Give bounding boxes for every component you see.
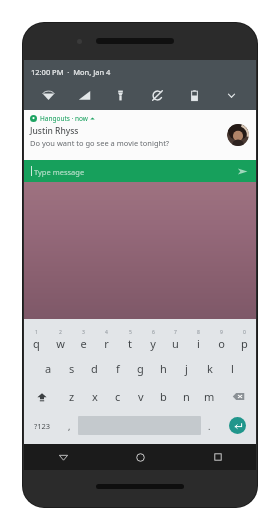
button[interactable]: 3 — [72, 326, 95, 354]
staticText: Type message — [34, 167, 85, 177]
staticText: d — [91, 361, 98, 376]
staticText: m — [204, 389, 215, 404]
button[interactable]: ?123 — [24, 411, 61, 440]
staticText: l — [231, 361, 234, 376]
button[interactable]: 2 — [48, 326, 72, 354]
staticText: o — [218, 336, 225, 351]
button[interactable]: d — [83, 354, 106, 382]
staticText: i — [197, 336, 200, 351]
button[interactable]: Wi-Fi — [30, 83, 66, 107]
staticText: 9 — [220, 329, 223, 336]
button[interactable]: g — [129, 354, 152, 382]
button[interactable]: 6 — [141, 326, 164, 354]
staticText: . — [208, 420, 211, 432]
button[interactable]: Mobile signal — [66, 83, 102, 107]
button[interactable]: 7 — [164, 326, 187, 354]
staticText: 7 — [174, 329, 177, 336]
button[interactable]: 8 — [187, 326, 210, 354]
staticText: r — [104, 336, 109, 351]
button[interactable]: 9 — [210, 326, 233, 354]
staticText: u — [172, 336, 179, 351]
staticText: n — [183, 389, 190, 404]
button[interactable]: n — [175, 382, 198, 411]
button[interactable]: 4 — [95, 326, 118, 354]
staticText: a — [45, 361, 52, 376]
button[interactable]: a — [37, 354, 60, 382]
staticText: 12:00 PM · Mon, Jan 4 — [31, 67, 111, 77]
button[interactable]: Flashlight — [102, 83, 139, 107]
staticText: h — [160, 361, 167, 376]
button[interactable]: x — [83, 382, 106, 411]
button[interactable]: , — [61, 411, 78, 440]
staticText: ?123 — [34, 421, 51, 431]
button[interactable]: h — [152, 354, 175, 382]
button[interactable]: v — [129, 382, 152, 411]
staticText: 6 — [152, 329, 155, 336]
staticText: , — [68, 420, 71, 432]
staticText: 2 — [59, 329, 62, 336]
staticText: 1 — [35, 329, 38, 336]
button[interactable]: m — [198, 382, 221, 411]
button[interactable]: j — [175, 354, 198, 382]
button[interactable]: b — [152, 382, 175, 411]
button[interactable]: Home — [102, 444, 179, 470]
button[interactable]: Send — [236, 165, 248, 177]
staticText: e — [80, 336, 87, 351]
button[interactable]: l — [221, 354, 244, 382]
staticText: s — [69, 361, 75, 376]
staticText: k — [207, 361, 213, 376]
staticText: z — [69, 389, 75, 404]
button[interactable]: Backspace — [221, 382, 256, 411]
button[interactable]: Enter — [218, 411, 256, 440]
staticText: q — [33, 336, 40, 351]
button[interactable]: Expand quick settings — [213, 83, 250, 107]
staticText: t — [128, 336, 132, 351]
button[interactable]: Shift — [24, 382, 60, 411]
staticText: p — [241, 336, 248, 351]
button[interactable]: Hangouts · now — [24, 110, 256, 160]
button[interactable]: 5 — [118, 326, 141, 354]
staticText: 4 — [105, 329, 108, 336]
button[interactable]: c — [106, 382, 129, 411]
staticText: g — [137, 361, 144, 376]
staticText: y — [150, 336, 156, 351]
staticText: Justin Rhyss — [30, 125, 79, 137]
staticText: Hangouts · now — [40, 114, 88, 123]
button[interactable]: k — [198, 354, 221, 382]
button[interactable]: Auto-rotate off — [139, 83, 176, 107]
staticText: x — [92, 389, 98, 404]
staticText: v — [138, 389, 144, 404]
staticText: w — [56, 336, 65, 351]
staticText: Do you want to go see a movie tonight? — [30, 138, 170, 148]
staticText: 0 — [243, 329, 246, 336]
staticText: 5 — [129, 329, 132, 336]
button[interactable]: s — [60, 354, 83, 382]
staticText: j — [185, 361, 188, 376]
button[interactable]: Type message — [24, 160, 256, 182]
button[interactable]: Recent apps — [179, 444, 256, 470]
staticText: b — [160, 389, 167, 404]
staticText: f — [116, 361, 120, 376]
staticText: 3 — [82, 329, 85, 336]
button[interactable]: Back — [24, 444, 102, 470]
button[interactable]: f — [106, 354, 129, 382]
button[interactable]: . — [201, 411, 218, 440]
button[interactable]: 0 — [233, 326, 256, 354]
button[interactable]: z — [60, 382, 83, 411]
button[interactable]: 1 — [24, 326, 48, 354]
staticText: c — [115, 389, 121, 404]
staticText: 8 — [197, 329, 200, 336]
button[interactable]: Battery — [176, 83, 213, 107]
